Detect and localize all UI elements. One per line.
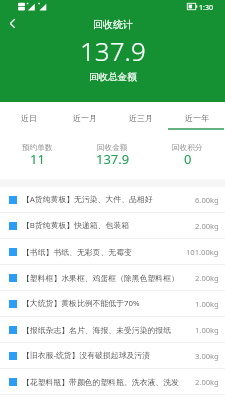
button[interactable]: 近一月 <box>57 102 113 132</box>
staticText: 【报纸杂志】名片、海报、未受污染的报纸 <box>22 325 195 335</box>
button[interactable]: 【塑料框】水果框、鸡蛋框（除黑色塑料框） <box>0 265 225 290</box>
button[interactable]: 预约单数 <box>0 132 75 179</box>
staticText: 近三月 <box>129 113 153 123</box>
button[interactable]: 近日 <box>0 102 57 132</box>
staticText: 【大统货】黄板比例不能低于70% <box>22 298 195 309</box>
staticText: 【花塑料瓶】带颜色的塑料瓶。洗衣液、洗发 <box>22 377 195 387</box>
staticText: 1.00kg <box>195 299 219 309</box>
button[interactable]: 【大统货】黄板比例不能低于70% <box>0 291 225 316</box>
staticText: 3.00kg <box>195 351 219 361</box>
staticText: 137.9 <box>96 150 130 168</box>
button[interactable]: 回收金额 <box>75 132 150 179</box>
button[interactable]: 【A货纯黄板】无污染、大件、品相好 <box>0 187 225 212</box>
staticText: 预约单数 <box>22 143 53 153</box>
button[interactable]: Back <box>0 15 26 33</box>
staticText: 0 <box>184 150 192 168</box>
staticText: 回收积分 <box>172 143 203 153</box>
staticText: 101.00kg <box>186 247 219 257</box>
staticText: 近一月 <box>73 113 97 123</box>
staticText: 【塑料框】水果框、鸡蛋框（除黑色塑料框） <box>22 273 195 283</box>
staticText: 1:30 <box>199 3 213 13</box>
button[interactable]: 近一年 <box>169 102 225 132</box>
staticText: 2.00kg <box>195 273 219 283</box>
staticText: 137.9 <box>80 33 146 68</box>
staticText: 【A货纯黄板】无污染、大件、品相好 <box>22 194 195 205</box>
button[interactable]: 【旧衣服-统货】没有破损起球及污渍 <box>0 343 225 368</box>
staticText: 【B货纯黄板】快递箱、包装箱 <box>22 220 195 231</box>
button[interactable]: 【书纸】书纸、无彩页、无霉变 <box>0 239 225 264</box>
staticText: 6.00kg <box>195 195 219 205</box>
staticText: 回收统计 <box>93 18 133 31</box>
staticText: 近日 <box>21 113 37 123</box>
staticText: 2.00kg <box>195 221 219 231</box>
button[interactable]: 回收积分 <box>150 132 225 179</box>
staticText: 【旧衣服-统货】没有破损起球及污渍 <box>22 350 195 361</box>
staticText: 回收金额 <box>97 143 128 153</box>
staticText: 近一年 <box>185 113 209 123</box>
staticText: 11 <box>30 150 45 168</box>
staticText: 回收总金额 <box>89 71 137 83</box>
staticText: 【书纸】书纸、无彩页、无霉变 <box>22 247 186 257</box>
button[interactable]: 【报纸杂志】名片、海报、未受污染的报纸 <box>0 317 225 342</box>
staticText: 2.00kg <box>195 377 219 387</box>
button[interactable]: 【B货纯黄板】快递箱、包装箱 <box>0 213 225 238</box>
button[interactable]: 【花塑料瓶】带颜色的塑料瓶。洗衣液、洗发 <box>0 369 225 394</box>
button[interactable]: 近三月 <box>113 102 169 132</box>
staticText: 1.00kg <box>195 325 219 335</box>
